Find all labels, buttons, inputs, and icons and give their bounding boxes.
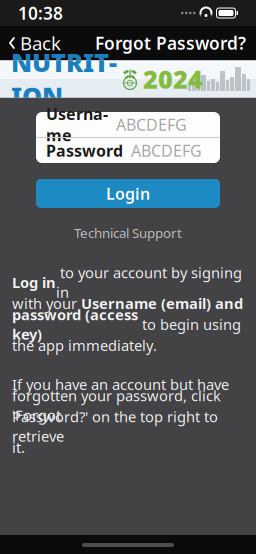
button[interactable]: Back [0, 25, 69, 61]
staticText: Password?' on the top right to retrieve [12, 407, 218, 446]
staticText: Username (email) and [81, 293, 243, 313]
staticText: Log in [12, 272, 56, 292]
button[interactable]: Username [36, 112, 220, 137]
staticText: ABCDEFG [116, 114, 187, 135]
staticText: forgotten your password, click 'Forgot [12, 386, 221, 425]
staticText: Back [20, 31, 61, 55]
staticText: the app immediately. [12, 335, 157, 355]
button[interactable]: Password [36, 138, 220, 163]
staticText: ABCDEFG [131, 140, 202, 161]
staticText: Password [46, 140, 123, 161]
staticText: it. [12, 437, 25, 457]
staticText: to begin using [138, 314, 241, 334]
staticText: with your [12, 293, 81, 313]
button[interactable]: Login [36, 179, 220, 208]
staticText: Login [106, 183, 150, 204]
staticText: to your account by signing in [56, 263, 242, 302]
button[interactable]: Forgot Password? [87, 25, 256, 60]
staticText: Forgot Password? [95, 31, 246, 54]
staticText: NUTRITION [11, 45, 117, 113]
staticText: If you have an account but have [12, 374, 229, 394]
button[interactable]: Technical Support [64, 220, 192, 246]
staticText: 2024 [143, 62, 203, 96]
staticText: Username [46, 103, 108, 146]
staticText: Technical Support [74, 224, 182, 242]
staticText: password (access key) [12, 305, 138, 344]
staticText: 10:38 [18, 1, 63, 24]
